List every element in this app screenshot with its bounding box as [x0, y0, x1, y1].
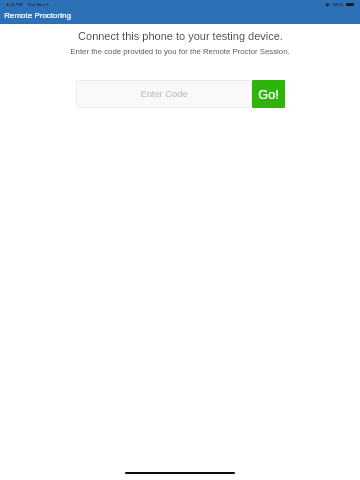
staticText: 4:11 PM	[6, 2, 23, 7]
other: Battery full	[346, 2, 354, 7]
staticText: Thu Nov 5	[27, 2, 49, 7]
staticText: Enter the code provided to you for the R…	[70, 47, 290, 56]
staticText: Enter Code	[140, 89, 188, 99]
other: Wi-Fi	[325, 3, 330, 7]
button[interactable]: Enter Code	[76, 80, 252, 108]
staticText: Connect this phone to your testing devic…	[78, 30, 283, 42]
staticText: 100%	[332, 2, 344, 7]
staticText: Go!	[258, 87, 279, 101]
staticText: Remote Proctoring	[4, 11, 71, 20]
button[interactable]: Go!	[252, 80, 285, 108]
